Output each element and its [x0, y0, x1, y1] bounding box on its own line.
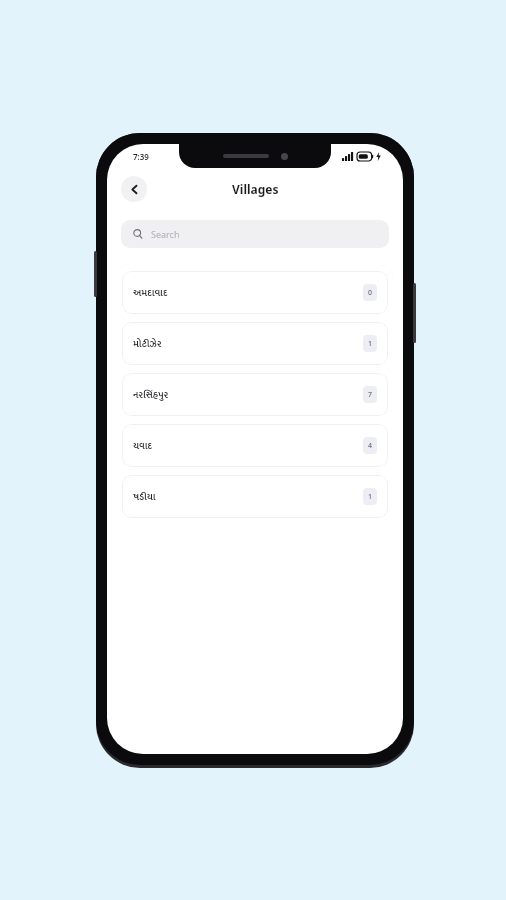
button[interactable]: મોટીઝેર: [122, 322, 388, 365]
button[interactable]: નરસિંહપુર: [122, 373, 388, 416]
button[interactable]: યવાદ: [122, 424, 388, 467]
button[interactable]: Back: [121, 176, 147, 202]
staticText: 4: [368, 441, 373, 451]
staticText: 1: [368, 492, 373, 502]
staticText: 1: [368, 339, 373, 349]
staticText: Search: [151, 228, 180, 240]
button[interactable]: Search: [121, 220, 389, 248]
staticText: 0: [368, 288, 373, 298]
staticText: યવાદ: [133, 438, 363, 454]
button[interactable]: અમદાવાદ: [122, 271, 388, 314]
staticText: ષડીયા: [133, 489, 363, 505]
staticText: 7:39: [133, 151, 149, 162]
staticText: Villages: [232, 181, 279, 197]
staticText: 7: [368, 390, 373, 400]
staticText: મોટીઝેર: [133, 336, 363, 352]
button[interactable]: ષડીયા: [122, 475, 388, 518]
staticText: નરસિંહપુર: [133, 387, 363, 403]
staticText: અમદાવાદ: [133, 285, 363, 301]
